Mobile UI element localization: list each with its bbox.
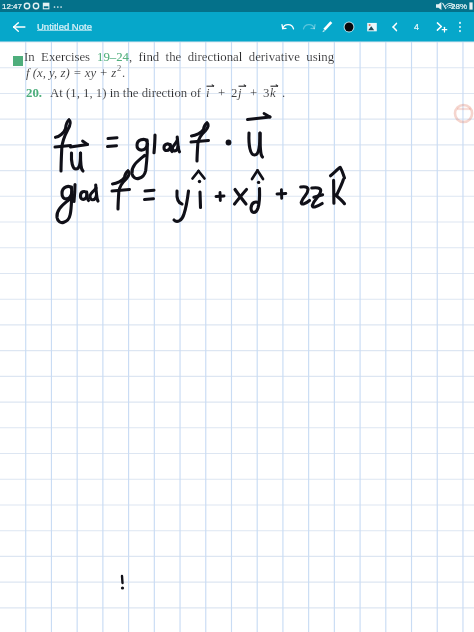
staticText: 4: [414, 22, 420, 32]
staticText: 2: [231, 86, 238, 100]
button[interactable]: Navigate up: [9, 17, 29, 37]
staticText: i: [206, 86, 210, 100]
staticText: +: [250, 86, 258, 100]
button[interactable]: Insert image: [363, 18, 381, 36]
button[interactable]: Untitled Note: [37, 21, 92, 32]
button[interactable]: 20.: [26, 86, 42, 100]
staticText: +: [218, 86, 226, 100]
staticText: .: [282, 86, 286, 100]
staticText: At (1, 1, 1) in the direction of: [50, 86, 202, 100]
button[interactable]: 4: [408, 18, 426, 36]
button[interactable]: Add page: [432, 18, 450, 36]
staticText: f (x, y, z) = xy + z: [26, 66, 117, 80]
staticText: k: [270, 86, 276, 100]
staticText: j: [238, 86, 242, 100]
staticText: 19–24: [97, 50, 129, 64]
staticText: .: [122, 66, 126, 80]
staticText: , find the directional derivative using: [129, 50, 335, 64]
staticText: 12:47: [2, 2, 23, 11]
button[interactable]: Redo: [300, 18, 318, 36]
staticText: In Exercises: [24, 50, 97, 64]
button[interactable]: Undo: [279, 18, 297, 36]
button[interactable]: Pen: [318, 18, 336, 36]
button[interactable]: Colour: [340, 18, 358, 36]
button[interactable]: More options: [451, 18, 469, 36]
staticText: 28%: [451, 2, 468, 11]
staticText: 3: [263, 86, 270, 100]
button[interactable]: Previous page: [386, 18, 404, 36]
staticText: 2: [117, 63, 122, 72]
